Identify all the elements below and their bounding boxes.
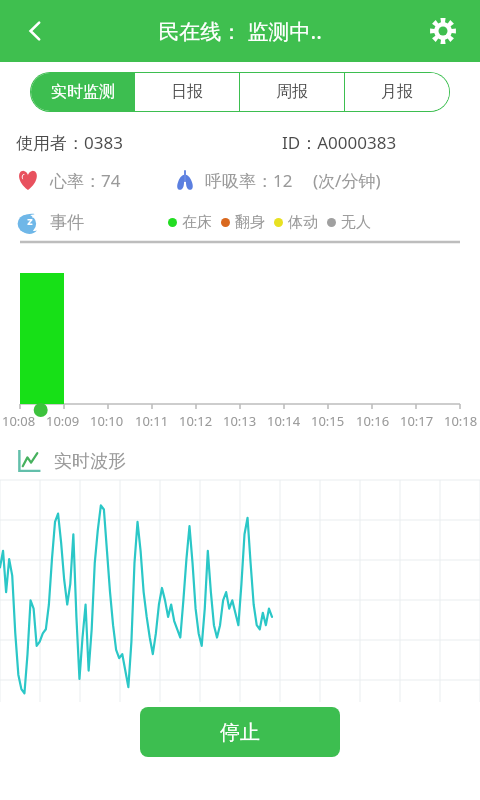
staticText: 10:18 (444, 412, 478, 430)
staticText: 月报 (381, 82, 413, 102)
staticText: 实时波形 (54, 450, 126, 473)
staticText: 呼吸率：12 (205, 169, 293, 192)
staticText: 翻身 (235, 213, 265, 232)
staticText: 周报 (276, 82, 308, 102)
staticText: 10:09 (46, 412, 80, 430)
staticText: 日报 (171, 82, 203, 102)
staticText: 10:08 (2, 412, 36, 430)
button[interactable]: Back (12, 8, 58, 54)
button[interactable]: 实时监测 (31, 73, 134, 111)
staticText: 在床 (182, 213, 212, 232)
button[interactable]: 停止 (140, 707, 340, 757)
staticText: 10:10 (90, 412, 124, 430)
staticText: ID：A0000383 (282, 131, 397, 154)
staticText: 10:11 (135, 412, 169, 430)
staticText: 使用者：0383 (16, 131, 123, 154)
button[interactable]: 日报 (135, 73, 239, 111)
staticText: 10:12 (179, 412, 213, 430)
staticText: 民在线： 监测中.. (158, 17, 322, 46)
staticText: 10:14 (267, 412, 301, 430)
staticText: 实时监测 (51, 82, 115, 102)
staticText: 10:16 (356, 412, 390, 430)
staticText: (次/分钟) (313, 169, 381, 192)
button[interactable]: 周报 (240, 73, 344, 111)
button[interactable]: 月报 (345, 73, 449, 111)
staticText: 停止 (220, 720, 260, 745)
staticText: 事件 (50, 212, 84, 233)
staticText: 10:13 (223, 412, 257, 430)
staticText: 心率：74 (50, 169, 121, 192)
button[interactable]: Settings (420, 8, 466, 54)
staticText: 10:15 (311, 412, 345, 430)
staticText: 体动 (288, 213, 318, 232)
staticText: 无人 (341, 213, 371, 232)
staticText: 10:17 (400, 412, 434, 430)
